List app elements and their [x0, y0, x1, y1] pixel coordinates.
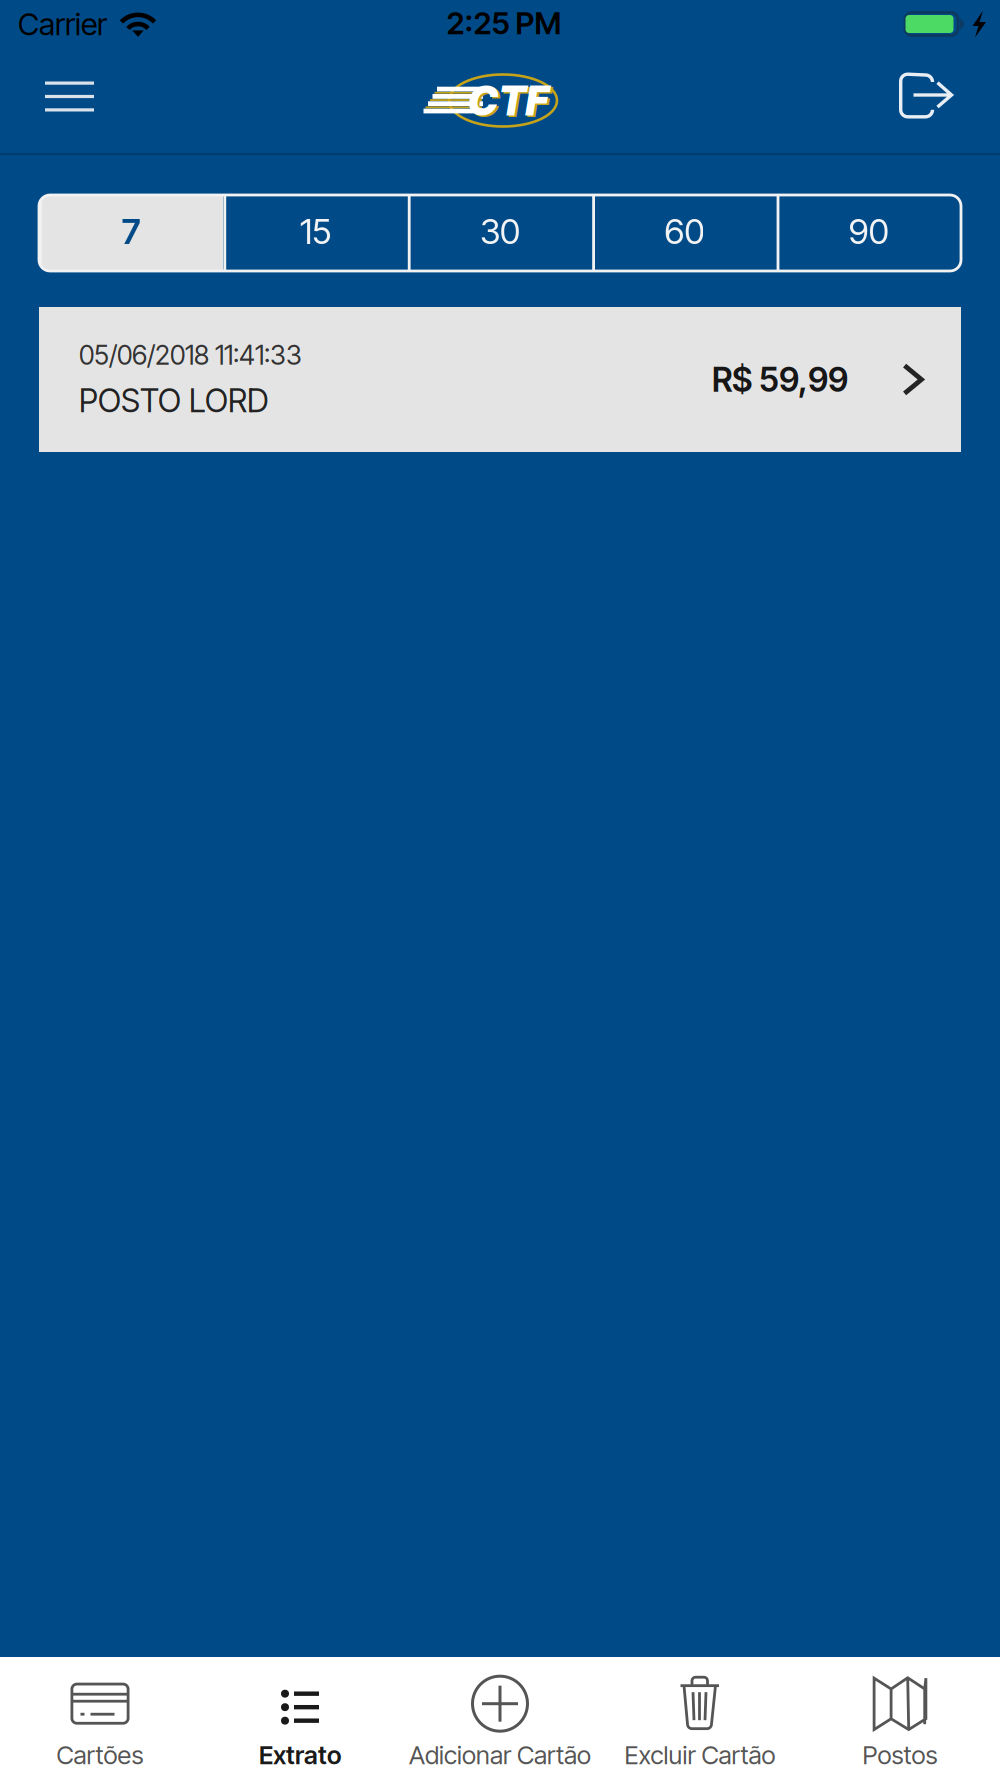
staticText: 90: [849, 210, 889, 252]
staticText: 05/06/2018 11:41:33: [79, 339, 302, 371]
button[interactable]: 90: [777, 195, 961, 271]
button[interactable]: Postos: [800, 1657, 1000, 1778]
staticText: 2:25 PM: [446, 4, 561, 41]
staticText: CTF: [469, 77, 550, 127]
button[interactable]: 30: [408, 195, 592, 271]
staticText: POSTO LORD: [79, 381, 269, 420]
staticText: Excluir Cartão: [624, 1740, 775, 1770]
staticText: 7: [122, 210, 141, 252]
staticText: Adicionar Cartão: [409, 1740, 591, 1770]
button[interactable]: 60: [592, 195, 777, 271]
button[interactable]: 15: [223, 195, 408, 271]
staticText: R$ 59,99: [712, 359, 848, 400]
staticText: 30: [480, 210, 520, 252]
button[interactable]: Adicionar Cartão: [400, 1657, 600, 1778]
staticText: CTF: [467, 75, 548, 125]
staticText: Carrier: [18, 5, 107, 42]
staticText: 15: [300, 210, 331, 252]
staticText: Cartões: [56, 1740, 143, 1770]
button[interactable]: Excluir Cartão: [600, 1657, 800, 1778]
button[interactable]: Extrato: [200, 1657, 400, 1778]
button[interactable]: Sair: [870, 48, 1000, 153]
button[interactable]: 05/06/2018 11:41:33: [39, 307, 961, 452]
button[interactable]: Menu: [0, 48, 150, 153]
button[interactable]: Cartões: [0, 1657, 200, 1778]
button[interactable]: 7: [39, 195, 223, 271]
staticText: 60: [664, 210, 704, 252]
staticText: Extrato: [259, 1740, 341, 1770]
staticText: Postos: [862, 1740, 937, 1770]
